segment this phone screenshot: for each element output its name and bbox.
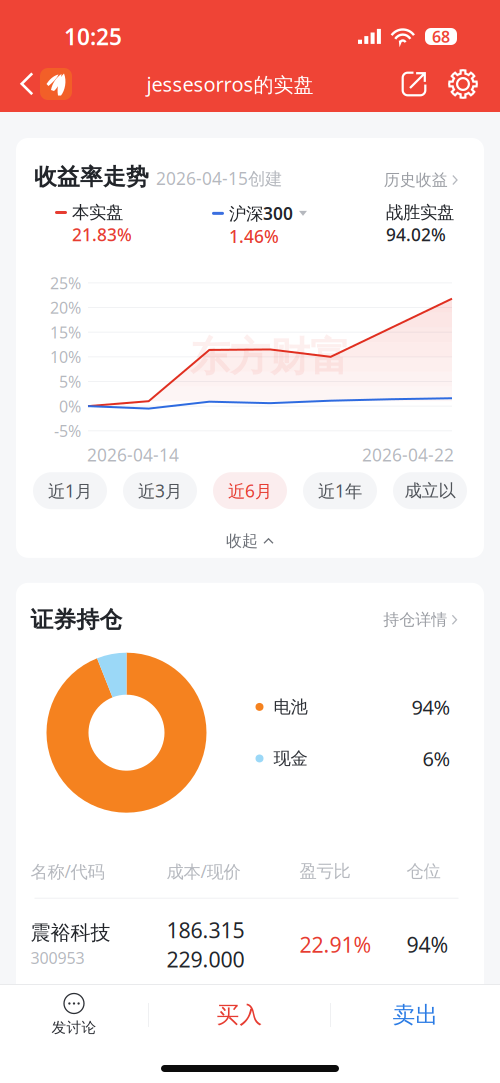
staticText: 近3月 (138, 479, 182, 502)
staticText: 2026-04-15创建 (156, 167, 282, 190)
staticText: 300953 (30, 947, 84, 968)
staticText: 10% (50, 346, 81, 367)
button[interactable]: Back (14, 59, 40, 109)
staticText: 15% (50, 322, 81, 343)
staticText: 卖出 (392, 1001, 438, 1029)
staticText: jessesorros的实盘 (146, 71, 313, 97)
staticText: -5% (54, 420, 81, 441)
staticText: 本实盘 (72, 202, 123, 223)
staticText: 94.02% (386, 223, 446, 246)
staticText: 成本/现价 (166, 860, 240, 883)
staticText: 10:25 (64, 21, 122, 51)
staticText: 买入 (216, 1001, 262, 1029)
button[interactable]: 买入 (149, 985, 330, 1045)
staticText: 近6月 (228, 479, 272, 502)
button[interactable]: 卖出 (331, 985, 500, 1045)
staticText: 收起 (226, 531, 258, 551)
button[interactable]: 发讨论 (0, 985, 148, 1045)
staticText: 68 (432, 26, 450, 47)
staticText: 近1月 (48, 479, 92, 502)
button[interactable]: 收起 (16, 509, 484, 558)
button[interactable]: 近3月 (123, 472, 197, 509)
staticText: 沪深300 (229, 202, 293, 225)
staticText: 5% (59, 371, 81, 392)
staticText: 持仓详情 (383, 610, 447, 630)
staticText: 战胜实盘 (386, 202, 454, 223)
staticText: 东方财富 (190, 332, 350, 381)
staticText: 94% (406, 930, 448, 959)
button[interactable]: Account (40, 59, 72, 109)
staticText: 成立以 (404, 480, 455, 501)
button[interactable]: 持仓详情 (383, 610, 457, 630)
button[interactable]: 近6月 (213, 472, 287, 509)
staticText: 2026-04-22 (362, 443, 454, 466)
staticText: 22.91% (299, 930, 371, 959)
staticText: 94% (411, 694, 450, 720)
staticText: 电池 (273, 696, 307, 718)
staticText: 21.83% (72, 223, 132, 246)
staticText: 盈亏比 (299, 861, 350, 882)
button[interactable]: Share (388, 59, 440, 109)
staticText: 收益率走势 (34, 163, 149, 191)
staticText: 1.46% (229, 225, 279, 248)
staticText: 6% (422, 745, 450, 772)
button[interactable]: 近1月 (33, 472, 107, 509)
staticText: 震裕科技 (30, 921, 110, 945)
staticText: 229.000 (166, 945, 244, 973)
staticText: 20% (50, 297, 81, 318)
staticText: 186.315 (166, 916, 244, 944)
staticText: 名称/代码 (30, 860, 104, 883)
staticText: 历史收益 (384, 170, 448, 190)
staticText: 2026-04-14 (87, 443, 179, 466)
staticText: 现金 (273, 748, 307, 769)
staticText: 0% (59, 396, 81, 417)
button[interactable]: Settings (440, 59, 486, 109)
button[interactable]: 近1年 (303, 472, 377, 509)
button[interactable]: 历史收益 (384, 170, 458, 191)
staticText: 近1年 (318, 479, 362, 502)
staticText: 发讨论 (51, 1018, 96, 1036)
staticText: 证券持仓 (30, 606, 122, 634)
button[interactable]: 成立以 (393, 472, 467, 509)
staticText: 仓位 (406, 861, 440, 882)
staticText: 25% (50, 272, 81, 293)
